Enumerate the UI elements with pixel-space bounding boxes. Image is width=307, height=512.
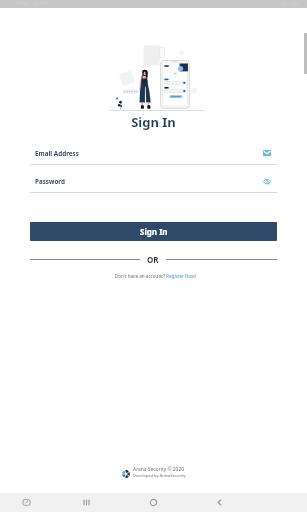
button[interactable]: Sign In xyxy=(30,222,277,241)
staticText: Developed by AranaSecurity xyxy=(133,473,186,478)
staticText: Arana Security © 2020 xyxy=(133,466,184,473)
staticText: OR xyxy=(147,254,159,265)
button[interactable]: Back xyxy=(210,493,229,512)
button[interactable]: Don't have an account? Register Now! xyxy=(2,273,307,279)
button[interactable]: Recents xyxy=(77,493,96,512)
button[interactable]: Screenshot xyxy=(17,493,36,512)
other: Email xyxy=(263,150,271,156)
staticText: Sign In xyxy=(140,226,168,237)
button[interactable]: Password xyxy=(30,173,277,193)
button[interactable]: Home xyxy=(144,493,163,512)
staticText: Email Address xyxy=(35,149,79,158)
staticText: Sign In xyxy=(0,113,307,131)
button[interactable]: Email Address xyxy=(30,145,277,165)
other: Show password xyxy=(263,178,271,185)
staticText: Password xyxy=(35,177,65,186)
